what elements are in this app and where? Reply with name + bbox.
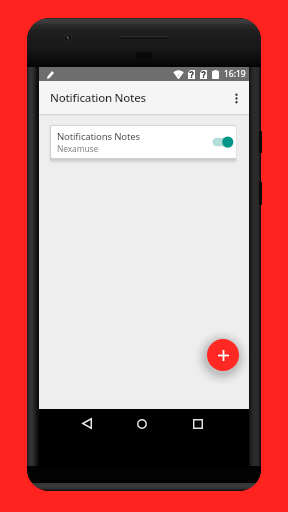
button[interactable]: Add note (207, 339, 239, 371)
button[interactable]: Back (76, 409, 98, 438)
other: Edit (47, 71, 54, 79)
button[interactable]: Home (131, 409, 153, 438)
staticText: 16:19 (224, 68, 246, 80)
staticText: Notifications Notes (57, 130, 140, 143)
button[interactable]: Notifications Notes (51, 126, 236, 158)
staticText: Notification Notes (50, 90, 146, 106)
button[interactable]: Recents (187, 409, 209, 438)
staticText: Nexamuse (57, 143, 99, 154)
button[interactable]: Toggle notifications (212, 135, 234, 149)
button[interactable]: More options (227, 85, 245, 111)
